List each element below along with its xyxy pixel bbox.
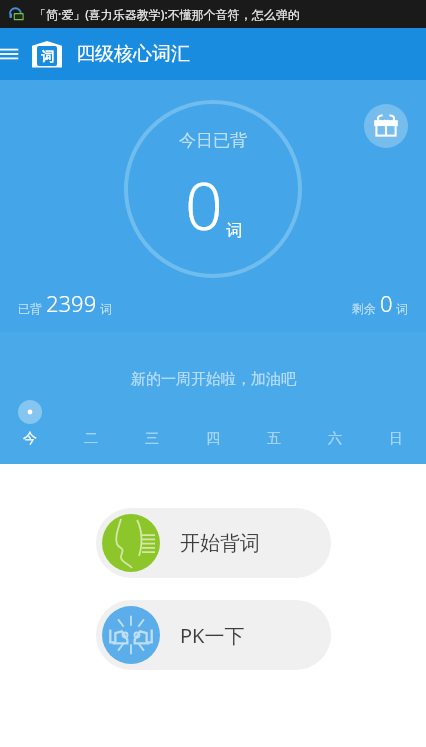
- staticText: 五: [267, 430, 281, 448]
- button[interactable]: 今: [0, 400, 60, 448]
- button[interactable]: Gift: [364, 104, 408, 148]
- staticText: 四级核心词汇: [76, 42, 190, 66]
- staticText: 剩余: [352, 301, 376, 316]
- staticText: 四: [206, 430, 220, 448]
- button[interactable]: 开始背词: [96, 508, 331, 578]
- staticText: 今日已背: [179, 130, 247, 151]
- staticText: PK一下: [180, 622, 245, 649]
- staticText: 已背: [18, 301, 42, 316]
- button[interactable]: Menu: [2, 41, 28, 67]
- staticText: 0: [185, 159, 223, 249]
- button[interactable]: 四: [182, 400, 243, 448]
- button[interactable]: 二: [60, 400, 121, 448]
- staticText: 2399: [46, 288, 97, 318]
- staticText: 词: [100, 301, 112, 316]
- button[interactable]: 日: [365, 400, 426, 448]
- staticText: 二: [84, 430, 98, 448]
- staticText: 词: [41, 48, 54, 64]
- staticText: 「简·爱」(喜力乐器教学):不懂那个音符，怎么弹的: [34, 6, 300, 22]
- staticText: 新的一周开始啦，加油吧: [131, 370, 296, 389]
- other: Music notification: [8, 5, 26, 23]
- staticText: 日: [389, 430, 403, 448]
- staticText: 开始背词: [180, 531, 260, 556]
- staticText: 三: [145, 430, 159, 448]
- button[interactable]: PK一下: [96, 600, 331, 670]
- staticText: 词: [226, 221, 242, 241]
- button[interactable]: 六: [304, 400, 365, 448]
- staticText: 词: [396, 301, 408, 316]
- staticText: 六: [328, 430, 342, 448]
- staticText: 今: [23, 430, 37, 448]
- button[interactable]: 三: [121, 400, 182, 448]
- button[interactable]: 五: [243, 400, 304, 448]
- staticText: 0: [380, 288, 393, 318]
